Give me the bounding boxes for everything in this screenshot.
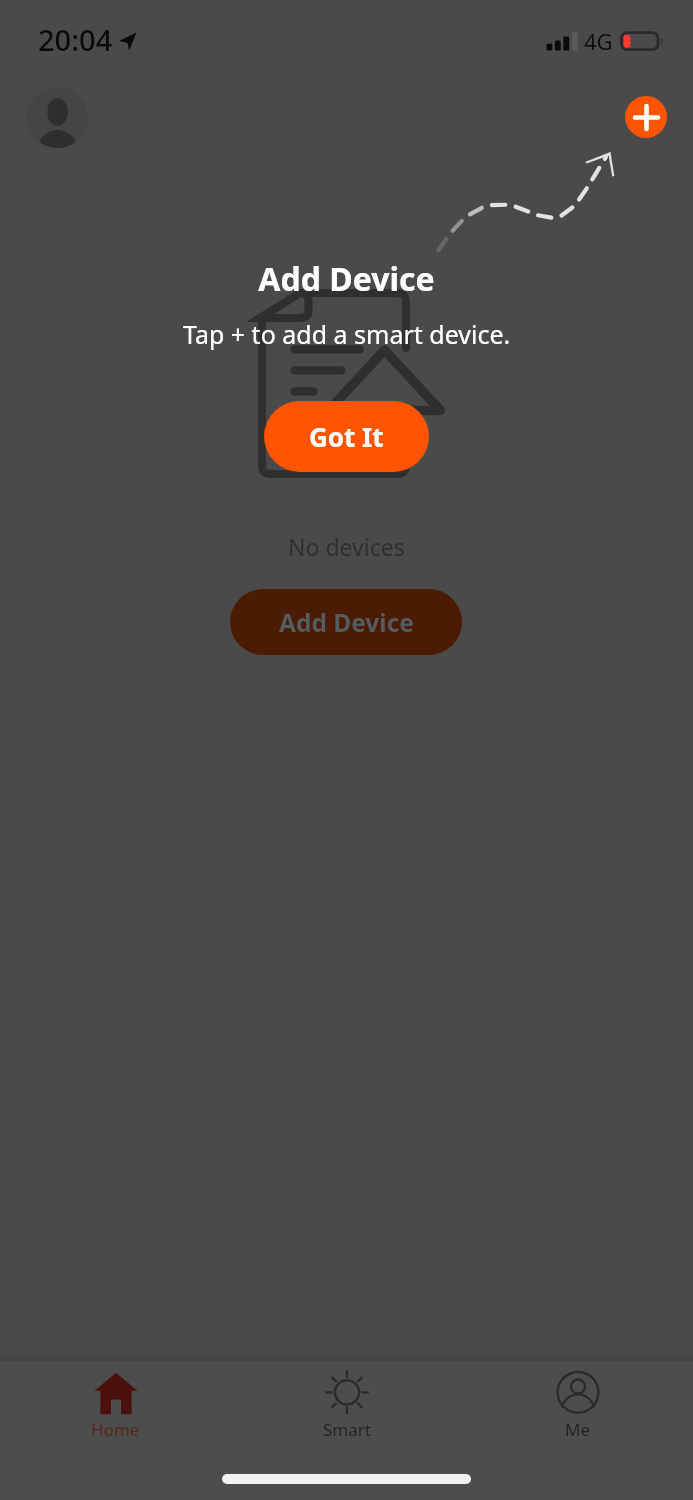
staticText: 20:04: [38, 20, 113, 59]
button[interactable]: Profile: [27, 87, 88, 148]
staticText: Got It: [309, 419, 384, 454]
staticText: Smart: [323, 1418, 371, 1441]
staticText: Add Device: [258, 257, 435, 301]
button[interactable]: Home: [0, 1361, 231, 1441]
button[interactable]: Got It: [264, 401, 429, 472]
staticText: 4G: [584, 26, 613, 56]
staticText: No devices: [288, 531, 405, 562]
button[interactable]: Me: [462, 1361, 693, 1441]
button[interactable]: Add Device: [230, 589, 462, 655]
button[interactable]: Smart: [231, 1361, 462, 1441]
staticText: Me: [565, 1418, 591, 1441]
staticText: Home: [91, 1418, 140, 1441]
staticText: Add Device: [279, 606, 414, 639]
staticText: Tap + to add a smart device.: [183, 317, 511, 351]
button[interactable]: Add device: [625, 96, 667, 138]
